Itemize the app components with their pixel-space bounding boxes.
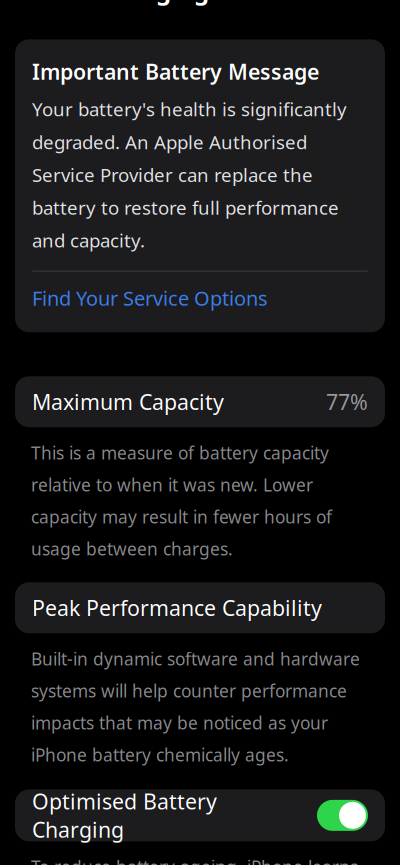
staticText: Your battery's health is significantly d… — [32, 97, 347, 253]
staticText: Maximum Capacity — [32, 388, 224, 416]
staticText: Optimised Battery Charging — [32, 787, 217, 844]
staticText: Built-in dynamic software and hardware s… — [31, 647, 360, 766]
staticText: Peak Performance Capability — [32, 594, 322, 622]
button[interactable]: Optimised Battery Charging — [15, 789, 385, 841]
staticText: Battery Health & Charging — [101, 0, 299, 6]
staticText: 77% — [326, 388, 368, 416]
staticText: To reduce battery ageing, iPhone learns … — [31, 855, 369, 865]
staticText: Find Your Service Options — [32, 285, 268, 311]
button[interactable]: Maximum Capacity — [15, 376, 385, 427]
staticText: This is a measure of battery capacity re… — [31, 441, 332, 560]
staticText: Important Battery Message — [32, 57, 319, 86]
button[interactable]: Peak Performance Capability — [15, 582, 385, 633]
button[interactable]: Find Your Service Options — [32, 272, 368, 324]
